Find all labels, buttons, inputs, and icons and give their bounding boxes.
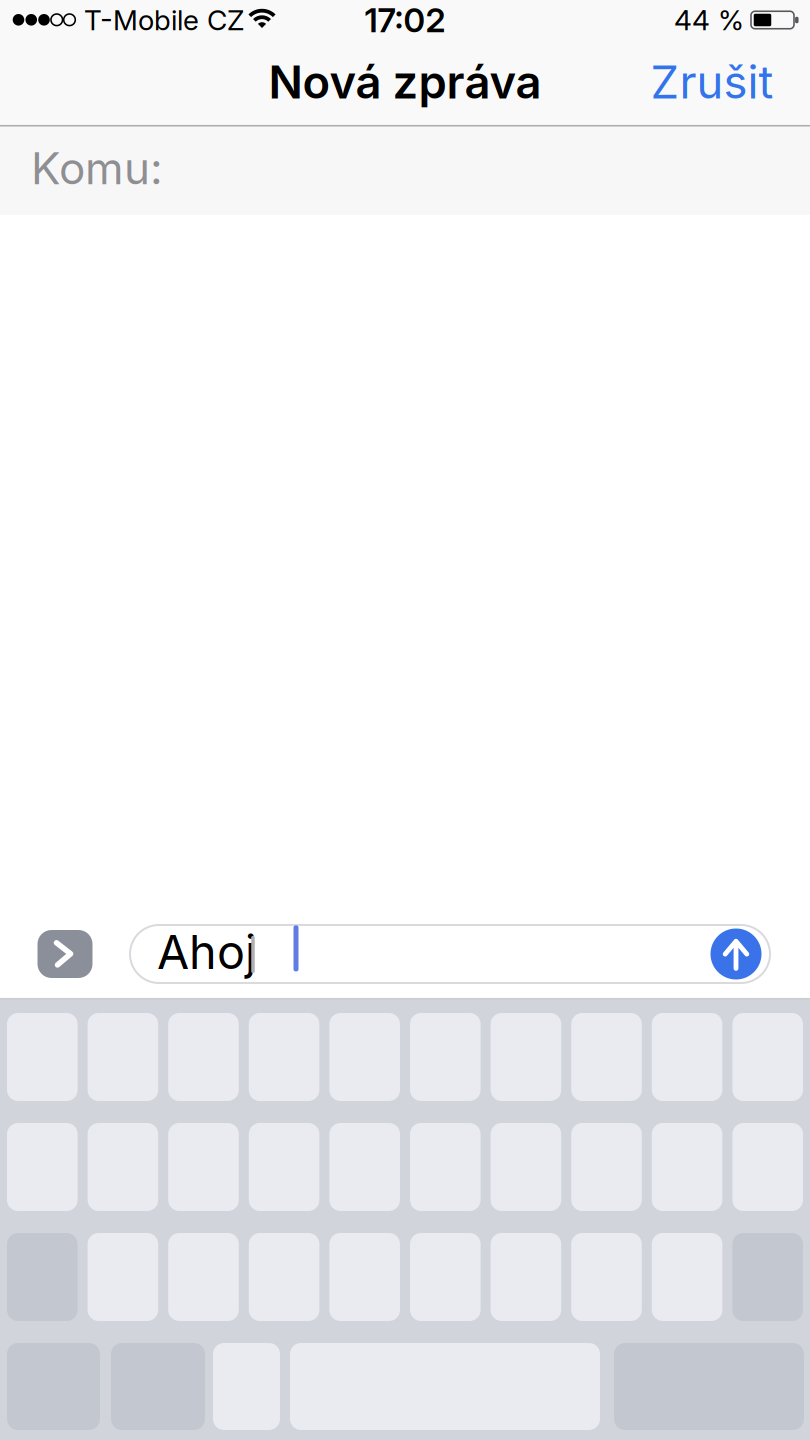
button[interactable]: Key (329, 1233, 400, 1321)
button[interactable]: Key (168, 1013, 239, 1101)
button[interactable]: Key (7, 1123, 78, 1211)
button[interactable]: Key (571, 1233, 642, 1321)
staticText: Komu: (31, 142, 163, 195)
button[interactable]: Key (168, 1233, 239, 1321)
button[interactable]: Key (410, 1123, 481, 1211)
button[interactable]: Zrušit (650, 55, 773, 109)
button[interactable]: Key (7, 1013, 78, 1101)
button[interactable]: Dictate (213, 1343, 280, 1430)
button[interactable]: Key (410, 1233, 481, 1321)
button[interactable]: Key (410, 1013, 481, 1101)
staticText: 17:02 (364, 0, 445, 40)
staticText: Ahoj (157, 924, 256, 980)
button[interactable]: Komu: (0, 127, 810, 215)
staticText: Nová zpráva (268, 55, 541, 109)
button[interactable]: Key (329, 1123, 400, 1211)
button[interactable]: Key (732, 1013, 803, 1101)
staticText: T-Mobile CZ (84, 3, 244, 37)
button[interactable]: Key (732, 1123, 803, 1211)
button[interactable]: Expand (37, 930, 92, 978)
staticText: Zrušit (650, 55, 773, 109)
button[interactable]: Key (571, 1123, 642, 1211)
button[interactable]: Send (710, 928, 761, 979)
staticText: 44 % (674, 3, 744, 37)
button[interactable]: Key (329, 1013, 400, 1101)
button[interactable]: Key (168, 1123, 239, 1211)
button[interactable]: Key (571, 1013, 642, 1101)
